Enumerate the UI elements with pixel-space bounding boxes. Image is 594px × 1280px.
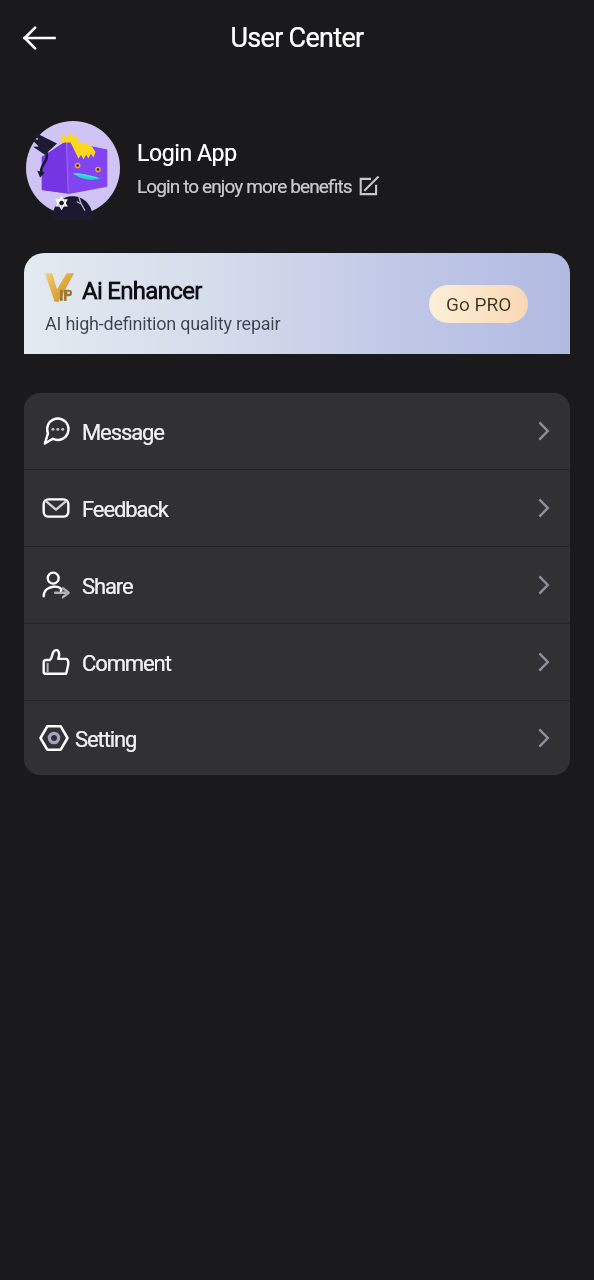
button[interactable]: Comment: [24, 624, 570, 700]
staticText: Login to enjoy more benefits: [137, 175, 352, 197]
staticText: Go PRO: [446, 293, 512, 315]
staticText: User Center: [0, 22, 594, 54]
staticText: Message: [82, 420, 164, 446]
button[interactable]: Message: [24, 393, 570, 469]
staticText: AI high-definition quality repair: [45, 313, 281, 334]
button[interactable]: Share: [24, 547, 570, 623]
staticText: Share: [82, 574, 133, 600]
staticText: Ai Enhancer: [82, 277, 202, 305]
button[interactable]: Back: [15, 14, 63, 62]
staticText: Login App: [137, 140, 237, 167]
button[interactable]: Go PRO: [429, 285, 528, 323]
button[interactable]: Setting: [24, 701, 570, 775]
staticText: Comment: [82, 651, 171, 677]
staticText: Feedback: [82, 497, 168, 523]
button[interactable]: Ai Enhancer: [24, 253, 570, 354]
button[interactable]: Login App: [0, 121, 594, 215]
staticText: Setting: [75, 727, 137, 753]
button[interactable]: Feedback: [24, 470, 570, 546]
